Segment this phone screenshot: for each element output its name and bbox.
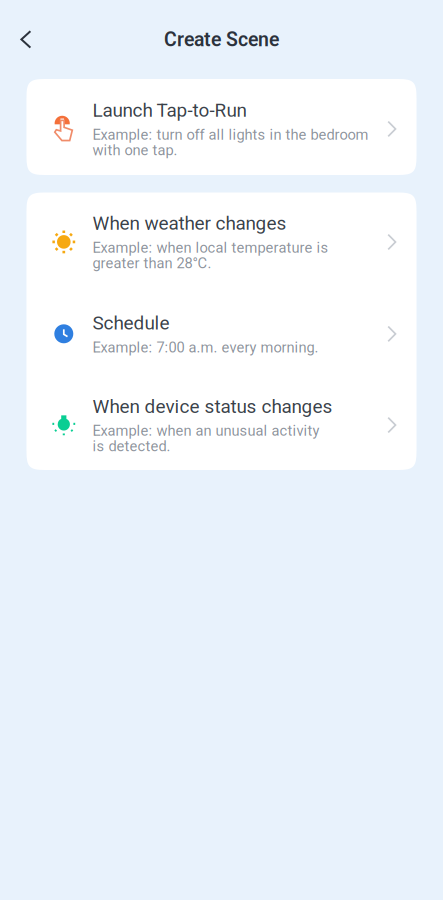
staticText: with one tap. [92, 142, 177, 159]
staticText: Example: turn off all lights in the bedr… [92, 126, 368, 143]
button[interactable]: Back [3, 15, 49, 63]
button[interactable]: When device status changes [26, 376, 416, 468]
staticText: greater than 28°C. [92, 255, 211, 272]
staticText: Example: when an unusual activity [92, 422, 319, 439]
staticText: Example: 7:00 a.m. every morning. [92, 339, 318, 356]
button[interactable]: Launch Tap-to-Run [26, 79, 416, 173]
staticText: Create Scene [164, 28, 279, 51]
staticText: When device status changes [92, 395, 332, 418]
button[interactable]: When weather changes [26, 192, 416, 285]
staticText: Example: when local temperature is [92, 239, 328, 256]
button[interactable]: Schedule [26, 285, 416, 376]
staticText: When weather changes [92, 212, 286, 234]
staticText: Launch Tap-to-Run [92, 99, 246, 121]
staticText: Schedule [92, 312, 169, 334]
staticText: is detected. [92, 438, 170, 455]
